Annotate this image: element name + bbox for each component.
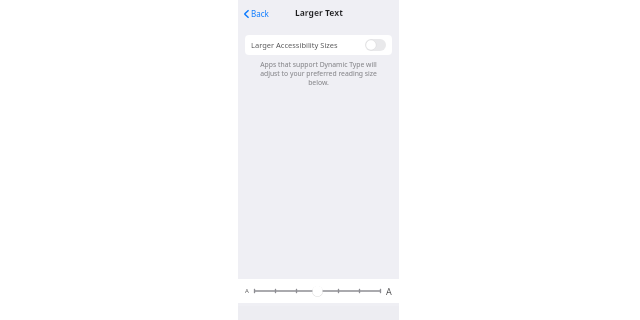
button[interactable]: Larger Accessibility Sizes [245,35,392,55]
staticText: A [245,287,249,295]
staticText: Back [251,8,269,19]
staticText: Larger Text [295,7,343,19]
staticText: Larger Accessibility Sizes [251,40,338,50]
button[interactable]: Text size slider [253,283,382,299]
staticText: Apps that support Dynamic Type will adju… [252,60,385,87]
button[interactable]: Larger Accessibility Sizes toggle, off [365,39,386,51]
button[interactable]: Back [240,5,272,22]
staticText: A [386,285,392,297]
